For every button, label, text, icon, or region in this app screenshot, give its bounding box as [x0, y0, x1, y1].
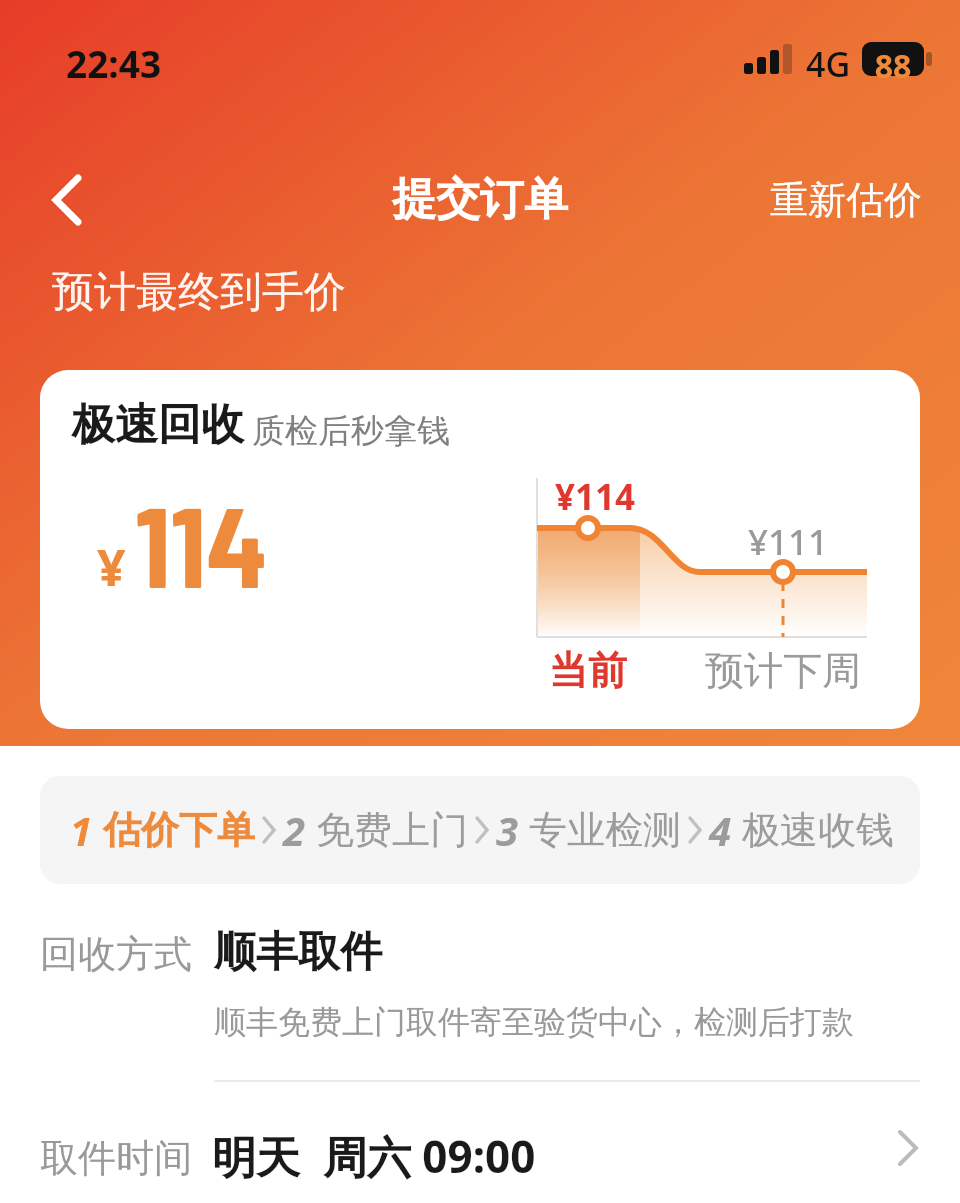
staticText: 4G	[806, 41, 851, 87]
staticText: 极速回收	[72, 398, 244, 452]
staticText: 顺丰取件	[214, 926, 382, 979]
staticText: 估价下单	[103, 806, 255, 854]
staticText: 114	[135, 476, 268, 610]
button[interactable]: 取件时间	[0, 1110, 960, 1203]
staticText: 取件时间	[40, 1134, 192, 1182]
staticText: 预计下周	[683, 646, 883, 695]
button[interactable]	[40, 170, 100, 230]
staticText: 4	[709, 803, 732, 857]
staticText: 2	[283, 803, 306, 857]
staticText: 预计最终到手价	[52, 266, 346, 319]
staticText: 回收方式	[40, 930, 192, 978]
staticText: 1	[70, 803, 93, 857]
staticText: 免费上门	[316, 806, 468, 854]
staticText: 88	[864, 44, 922, 88]
staticText: 专业检测	[529, 806, 681, 854]
button[interactable]: 重新估价	[770, 176, 922, 224]
staticText: 极速收钱	[742, 806, 894, 854]
staticText: 3	[496, 803, 519, 857]
staticText: ¥111	[688, 518, 888, 566]
staticText: 当前	[488, 646, 688, 695]
staticText: 顺丰免费上门取件寄至验货中心，检测后打款	[214, 1002, 854, 1042]
staticText: 重新估价	[770, 176, 922, 224]
staticText: 提交订单	[330, 172, 630, 227]
staticText: 质检后秒拿钱	[252, 410, 450, 452]
button[interactable]: 回收方式	[0, 910, 960, 1070]
staticText: 22:43	[66, 38, 162, 88]
staticText: ¥114	[495, 473, 695, 521]
staticText: 明天 周六 09:00	[212, 1126, 536, 1186]
staticText: ¥	[97, 533, 126, 601]
